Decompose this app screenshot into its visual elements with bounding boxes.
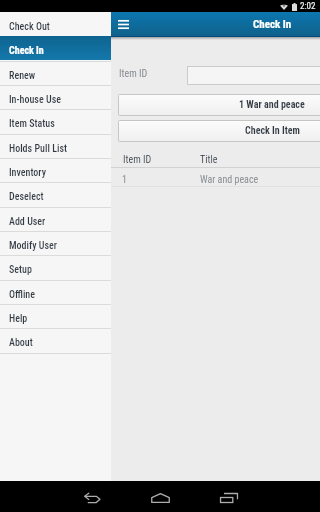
button[interactable]: Check Out: [0, 12, 111, 36]
button[interactable]: Check In Item: [119, 121, 320, 141]
staticText: About: [9, 337, 33, 349]
button[interactable]: Renew: [0, 61, 111, 85]
staticText: Holds Pull List: [9, 143, 67, 155]
staticText: Item ID: [119, 68, 148, 80]
staticText: War and peace: [200, 174, 259, 186]
button[interactable]: 1 War and peace: [119, 95, 320, 115]
button[interactable]: Offline: [0, 280, 111, 304]
button[interactable]: Inventory: [0, 158, 111, 182]
staticText: Item ID: [123, 154, 152, 166]
staticText: Add User: [9, 216, 46, 228]
button[interactable]: Setup: [0, 255, 111, 279]
staticText: Help: [9, 313, 28, 325]
button[interactable]: Check In: [0, 36, 111, 60]
button[interactable]: Home: [142, 481, 178, 512]
button[interactable]: Add User: [0, 207, 111, 231]
staticText: Renew: [9, 70, 36, 82]
staticText: Deselect: [9, 191, 44, 203]
button[interactable]: Back: [74, 481, 110, 512]
button[interactable]: Deselect: [0, 182, 111, 206]
staticText: Inventory: [9, 167, 46, 179]
staticText: 2:02: [300, 1, 316, 12]
staticText: Offline: [9, 289, 36, 301]
staticText: 1: [122, 174, 127, 186]
button[interactable]: Item Status: [0, 109, 111, 133]
staticText: Check Out: [9, 21, 50, 33]
staticText: Check In: [253, 18, 292, 31]
button[interactable]: Holds Pull List: [0, 134, 111, 158]
staticText: Setup: [9, 264, 32, 276]
staticText: Item Status: [9, 118, 55, 130]
staticText: 1 War and peace: [239, 99, 305, 111]
button[interactable]: Recent apps: [211, 481, 247, 512]
staticText: In-house Use: [9, 94, 61, 106]
button[interactable]: Open navigation drawer: [112, 12, 134, 36]
button[interactable]: Help: [0, 304, 111, 328]
staticText: Title: [200, 154, 218, 166]
button[interactable]: In-house Use: [0, 85, 111, 109]
button[interactable]: About: [0, 328, 111, 352]
button[interactable]: 1: [111, 168, 320, 186]
button[interactable]: Modify User: [0, 231, 111, 255]
staticText: Check In Item: [245, 125, 301, 137]
staticText: Check In: [9, 45, 44, 57]
staticText: Modify User: [9, 240, 58, 252]
